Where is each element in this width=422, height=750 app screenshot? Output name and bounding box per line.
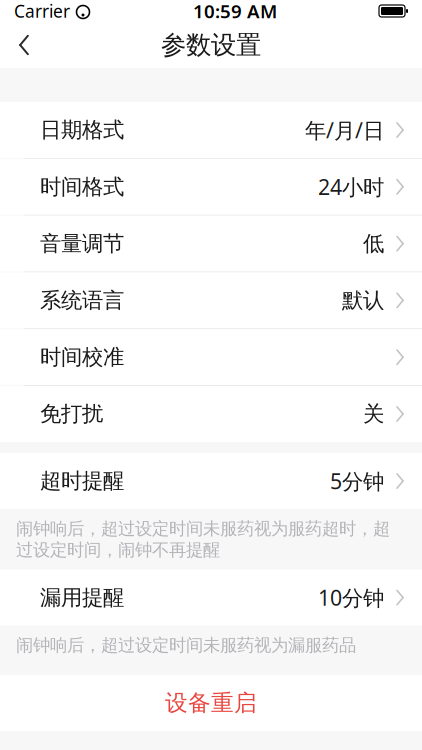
button[interactable]: 音量调节 bbox=[0, 216, 422, 272]
button[interactable]: 日期格式 bbox=[0, 102, 422, 158]
staticText: 10:59 AM bbox=[193, 0, 277, 23]
staticText: 音量调节 bbox=[40, 230, 124, 257]
button[interactable]: 免打扰 bbox=[0, 386, 422, 442]
staticText: 关 bbox=[363, 401, 384, 427]
staticText: 24小时 bbox=[318, 173, 384, 201]
staticText: 闹钟响后，超过设定时间未服药视为服药超时，超过设定时间，闹钟不再提醒 bbox=[16, 518, 390, 561]
button[interactable]: 漏用提醒 bbox=[0, 570, 422, 626]
staticText: 设备重启 bbox=[165, 689, 257, 717]
staticText: 超时提醒 bbox=[40, 468, 124, 494]
button[interactable]: 设备重启 bbox=[0, 675, 422, 731]
staticText: 年/月/日 bbox=[305, 116, 384, 144]
staticText: 闹钟响后，超过设定时间未服药视为漏服药品 bbox=[16, 635, 356, 656]
staticText: 低 bbox=[363, 230, 384, 257]
staticText: 漏用提醒 bbox=[40, 584, 124, 611]
staticText: Carrier bbox=[14, 0, 70, 22]
button[interactable]: 时间格式 bbox=[0, 159, 422, 215]
button[interactable]: 系统语言 bbox=[0, 272, 422, 328]
staticText: 5分钟 bbox=[330, 467, 384, 495]
button[interactable]: 超时提醒 bbox=[0, 453, 422, 509]
staticText: 免打扰 bbox=[40, 401, 103, 427]
button[interactable]: 时间校准 bbox=[0, 329, 422, 385]
staticText: 10分钟 bbox=[318, 583, 384, 612]
staticText: 系统语言 bbox=[40, 287, 124, 313]
staticText: 时间校准 bbox=[40, 344, 124, 370]
staticText: 时间格式 bbox=[40, 174, 124, 200]
button[interactable]: Back bbox=[0, 23, 48, 67]
staticText: 参数设置 bbox=[161, 29, 261, 60]
staticText: 默认 bbox=[342, 287, 384, 313]
staticText: 日期格式 bbox=[40, 117, 124, 143]
